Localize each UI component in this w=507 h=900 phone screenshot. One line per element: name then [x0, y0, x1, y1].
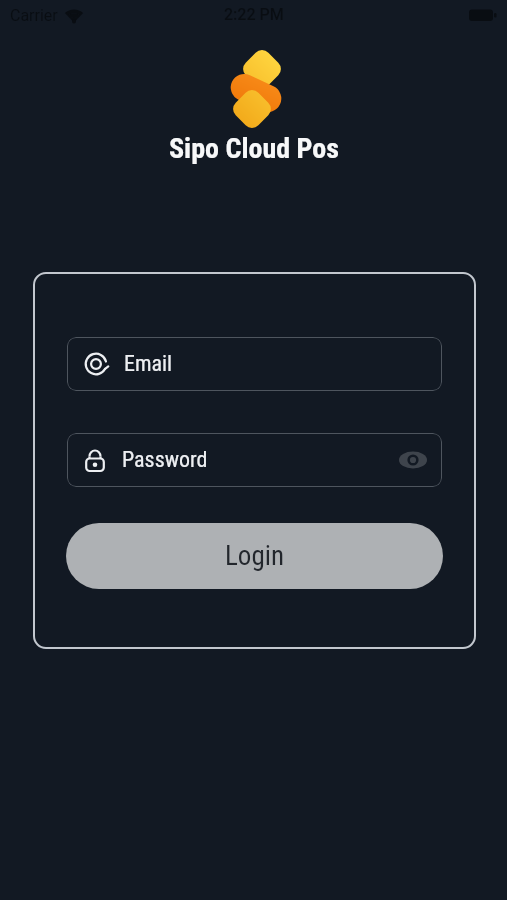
staticText: Password: [122, 447, 208, 473]
button[interactable]: Password: [67, 433, 442, 487]
staticText: Carrier: [10, 6, 58, 25]
button[interactable]: [399, 450, 427, 470]
button[interactable]: Login: [66, 523, 443, 589]
staticText: 2:22 PM: [224, 5, 284, 24]
staticText: Email: [124, 351, 173, 377]
button[interactable]: Email: [67, 337, 442, 391]
staticText: Login: [225, 540, 284, 572]
staticText: Sipo Cloud Pos: [169, 132, 339, 165]
